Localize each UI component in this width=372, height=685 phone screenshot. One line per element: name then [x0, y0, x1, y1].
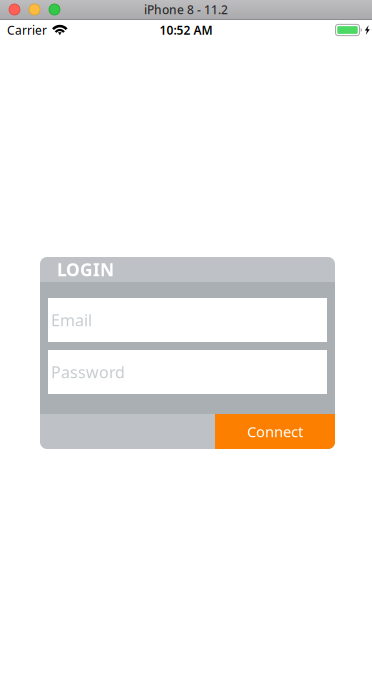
- staticText: Email: [51, 309, 92, 331]
- button[interactable]: Connect: [215, 414, 335, 449]
- staticText: 10:52 AM: [159, 22, 212, 38]
- staticText: Connect: [247, 422, 303, 441]
- staticText: iPhone 8 - 11.2: [144, 1, 228, 17]
- staticText: Password: [51, 361, 125, 383]
- staticText: LOGIN: [57, 258, 114, 281]
- staticText: Carrier: [7, 22, 47, 38]
